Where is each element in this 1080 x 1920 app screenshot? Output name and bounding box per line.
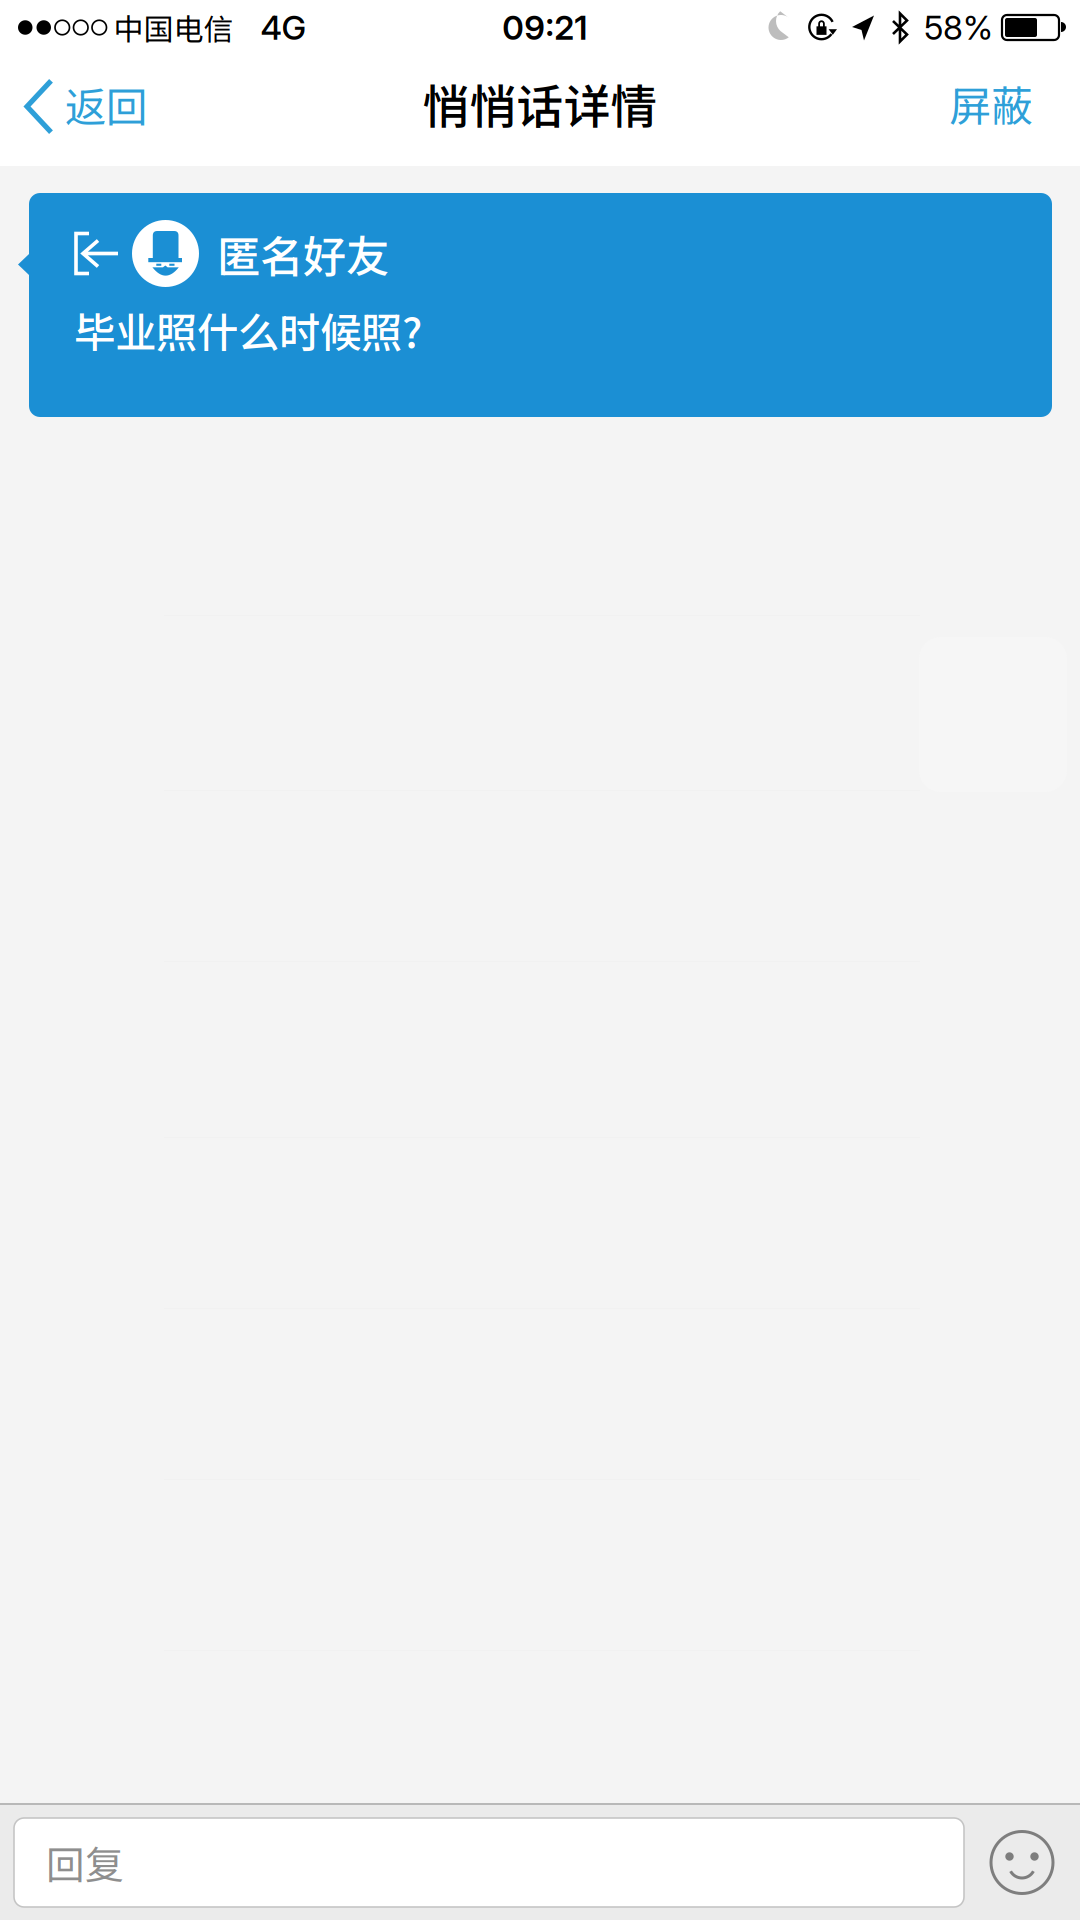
button[interactable]: 回复 <box>14 1818 964 1907</box>
button[interactable]: 屏蔽 <box>929 55 1080 166</box>
staticText: 毕业照什么时候照? <box>74 300 422 360</box>
button[interactable]: 返回 <box>0 55 165 166</box>
staticText: 09:21 <box>502 7 587 48</box>
staticText: 返回 <box>65 75 147 134</box>
staticText: 中国电信 <box>113 6 233 49</box>
staticText: 匿名好友 <box>217 222 389 285</box>
staticText: 4G <box>260 7 306 48</box>
staticText: 回复 <box>46 1834 124 1890</box>
staticText: 屏蔽 <box>949 73 1033 134</box>
button[interactable]: Emoji <box>964 1818 1080 1907</box>
staticText: 58% <box>924 7 993 48</box>
staticText: 悄悄话详情 <box>422 70 657 137</box>
